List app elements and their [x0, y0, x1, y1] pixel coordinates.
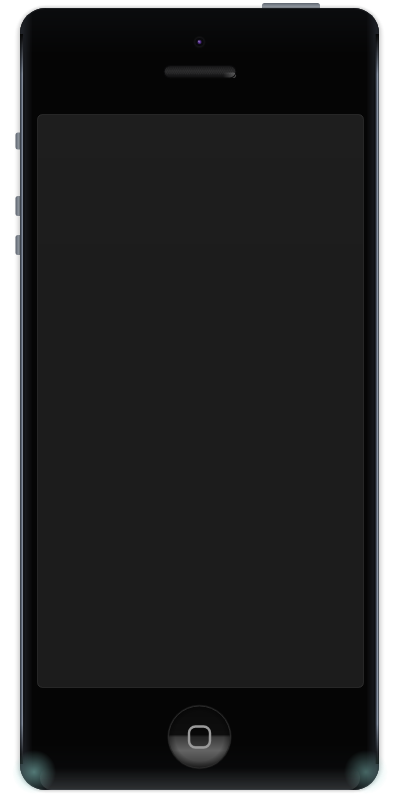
button[interactable]: iPhone device mockup with blank screen — [0, 0, 400, 800]
